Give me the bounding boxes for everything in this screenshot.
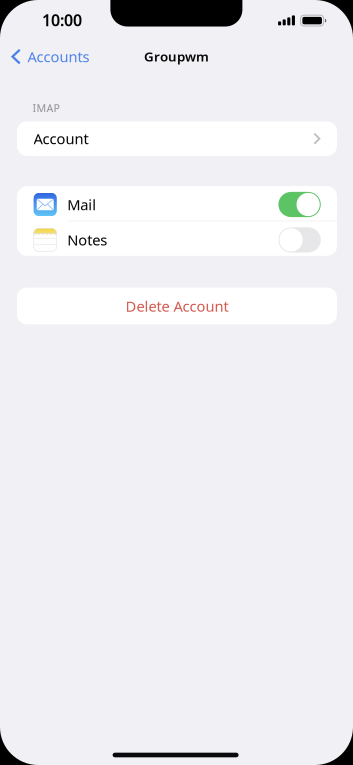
staticText: Accounts bbox=[27, 47, 89, 66]
staticText: Notes bbox=[67, 230, 107, 250]
staticText: Mail bbox=[67, 195, 96, 214]
button[interactable]: Delete Account bbox=[17, 288, 337, 324]
button[interactable]: Notes bbox=[278, 227, 321, 252]
button[interactable]: Accounts bbox=[2, 40, 98, 73]
staticText: 10:00 bbox=[42, 9, 82, 31]
staticText: Account bbox=[34, 129, 89, 148]
button[interactable]: Mail bbox=[278, 192, 321, 217]
staticText: IMAP bbox=[32, 101, 59, 115]
button[interactable]: Account bbox=[17, 121, 337, 156]
staticText: Delete Account bbox=[125, 296, 228, 316]
staticText: Groupwm bbox=[144, 47, 209, 65]
